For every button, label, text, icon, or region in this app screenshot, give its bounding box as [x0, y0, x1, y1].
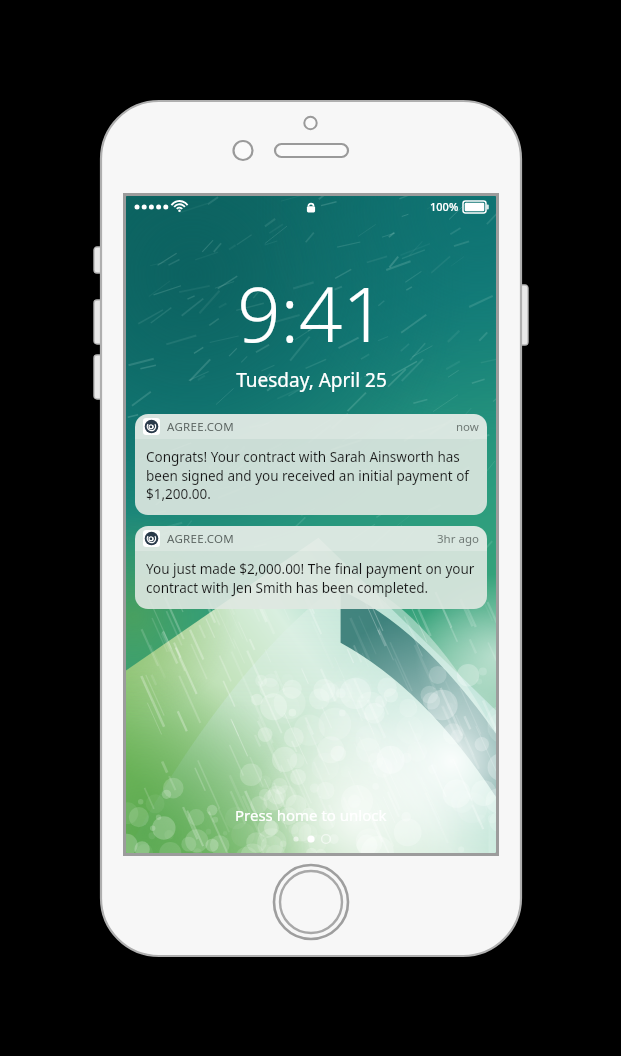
staticText: Press home to unlock	[235, 805, 387, 825]
staticText: now	[456, 419, 479, 435]
staticText: 3hr ago	[437, 531, 479, 547]
staticText: Tuesday, April 25	[236, 367, 387, 393]
staticText: AGREE.COM	[167, 419, 235, 435]
staticText: Congrats! Your contract with Sarah Ainsw…	[146, 448, 476, 502]
staticText: 9:41	[237, 261, 386, 365]
button[interactable]: AGREE.COM	[135, 414, 487, 515]
staticText: 100%	[430, 199, 459, 214]
button[interactable]: AGREE.COM	[135, 526, 487, 609]
staticText: You just made $2,000.00! The final payme…	[146, 560, 476, 596]
staticText: AGREE.COM	[167, 531, 235, 547]
button[interactable]: Press home to unlock	[225, 803, 397, 827]
